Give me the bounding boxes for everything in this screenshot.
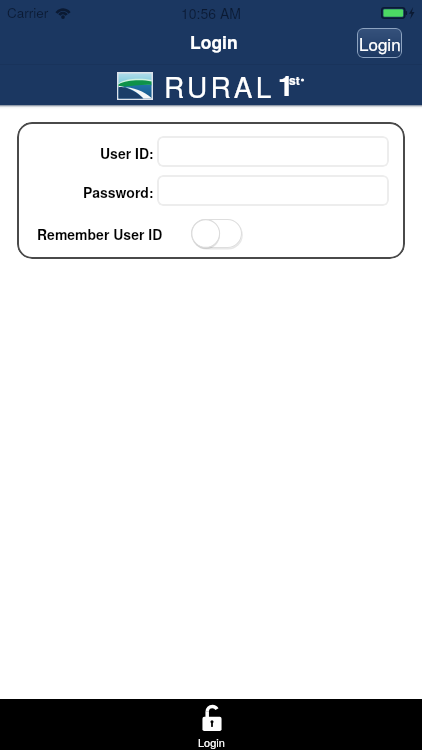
staticText: 1 bbox=[278, 64, 294, 104]
button[interactable]: Login bbox=[174, 702, 249, 747]
staticText: Carrier bbox=[7, 3, 49, 22]
staticText: 10:56 AM bbox=[181, 3, 241, 23]
staticText: Password: bbox=[83, 182, 154, 202]
button[interactable]: Login bbox=[357, 28, 402, 58]
staticText: Login bbox=[190, 29, 238, 54]
staticText: Login bbox=[359, 31, 401, 55]
staticText: Login bbox=[198, 734, 225, 750]
staticText: st bbox=[289, 71, 300, 88]
button[interactable]: Password: bbox=[157, 175, 389, 206]
button[interactable]: Remember User ID bbox=[191, 218, 243, 249]
staticText: User ID: bbox=[100, 143, 154, 163]
button[interactable]: User ID: bbox=[157, 136, 389, 167]
staticText: RURAL bbox=[164, 66, 275, 106]
staticText: Remember User ID bbox=[37, 224, 163, 244]
